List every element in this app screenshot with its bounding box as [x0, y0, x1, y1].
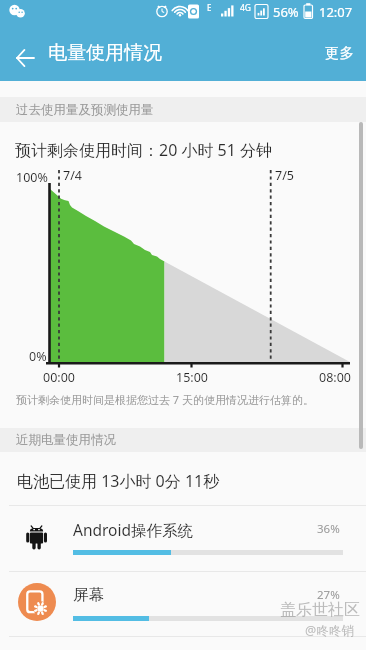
- staticText: E: [207, 2, 212, 13]
- staticText: 电池已使用 13小时 0分 11秒: [17, 470, 220, 492]
- staticText: 更多: [325, 44, 354, 62]
- staticText: 56%: [273, 3, 299, 21]
- staticText: 36%: [317, 521, 340, 537]
- staticText: 4G: [240, 2, 252, 14]
- staticText: 7/4: [63, 167, 82, 184]
- staticText: 27%: [317, 587, 340, 603]
- button[interactable]: Back: [6, 39, 43, 76]
- staticText: @咚咚销: [305, 622, 354, 639]
- staticText: 屏幕: [73, 585, 104, 605]
- staticText: 00:00: [43, 369, 75, 386]
- button[interactable]: 屏幕: [0, 572, 366, 637]
- staticText: 预计剩余使用时间：20 小时 51 分钟: [15, 139, 273, 161]
- button[interactable]: 更多: [316, 39, 362, 67]
- staticText: 08:00: [319, 369, 351, 386]
- staticText: 7/5: [275, 167, 294, 184]
- staticText: 100%: [16, 169, 48, 186]
- staticText: 15:00: [176, 369, 208, 386]
- staticText: 盖乐世社区: [280, 600, 360, 620]
- staticText: 0%: [29, 348, 47, 365]
- staticText: Android操作系统: [73, 519, 194, 540]
- staticText: 预计剩余使用时间是根据您过去 7 天的使用情况进行估算的。: [16, 392, 315, 407]
- staticText: 12:07: [319, 3, 353, 21]
- staticText: 电量使用情况: [48, 41, 162, 65]
- button[interactable]: Android操作系统: [0, 506, 366, 571]
- staticText: 近期电量使用情况: [16, 432, 116, 448]
- staticText: 过去使用量及预测使用量: [16, 102, 154, 118]
